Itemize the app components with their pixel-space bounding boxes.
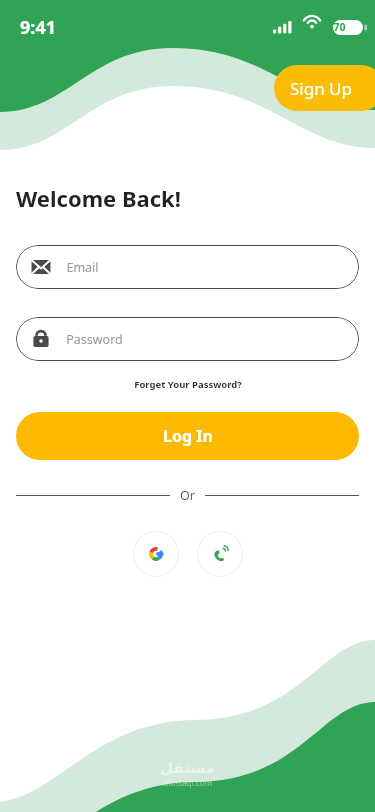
staticText: Password bbox=[66, 331, 123, 348]
staticText: مستقل bbox=[160, 759, 215, 776]
staticText: Welcome Back! bbox=[16, 183, 181, 213]
staticText: mostaql.com bbox=[163, 777, 212, 788]
staticText: Email bbox=[66, 259, 99, 276]
button[interactable]: Email bbox=[16, 245, 359, 289]
staticText: Sign Up bbox=[290, 77, 352, 100]
button[interactable]: Password bbox=[16, 317, 359, 361]
button[interactable]: Sign in with phone bbox=[197, 531, 243, 577]
button[interactable]: Forget Your Password? bbox=[128, 375, 248, 394]
staticText: 9:41 bbox=[20, 15, 56, 40]
staticText: 70 bbox=[333, 20, 346, 34]
button[interactable]: Sign in with Google bbox=[133, 531, 179, 577]
button[interactable]: Log In bbox=[16, 412, 359, 460]
staticText: Forget Your Password? bbox=[134, 378, 242, 391]
staticText: Or bbox=[180, 487, 195, 504]
button[interactable]: Sign Up bbox=[274, 65, 375, 111]
staticText: Log In bbox=[163, 425, 213, 447]
